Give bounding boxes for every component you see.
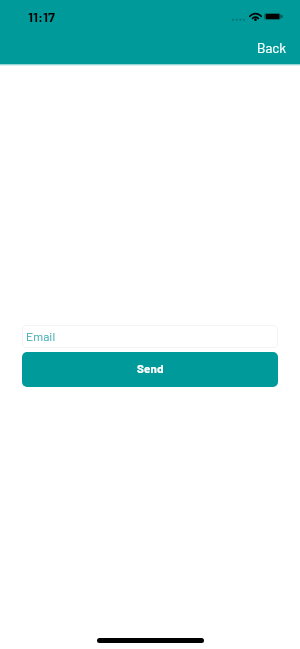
other: Cellular signal — [232, 12, 245, 21]
other: Wi-Fi — [249, 11, 262, 21]
other: Battery — [264, 13, 283, 20]
staticText: Email — [26, 329, 56, 343]
button[interactable]: Back — [245, 33, 300, 64]
button[interactable]: Email — [22, 325, 278, 348]
staticText: Back — [257, 39, 287, 55]
staticText: Send — [137, 361, 164, 375]
button[interactable]: Send — [22, 352, 278, 387]
staticText: 11:17 — [28, 8, 56, 25]
